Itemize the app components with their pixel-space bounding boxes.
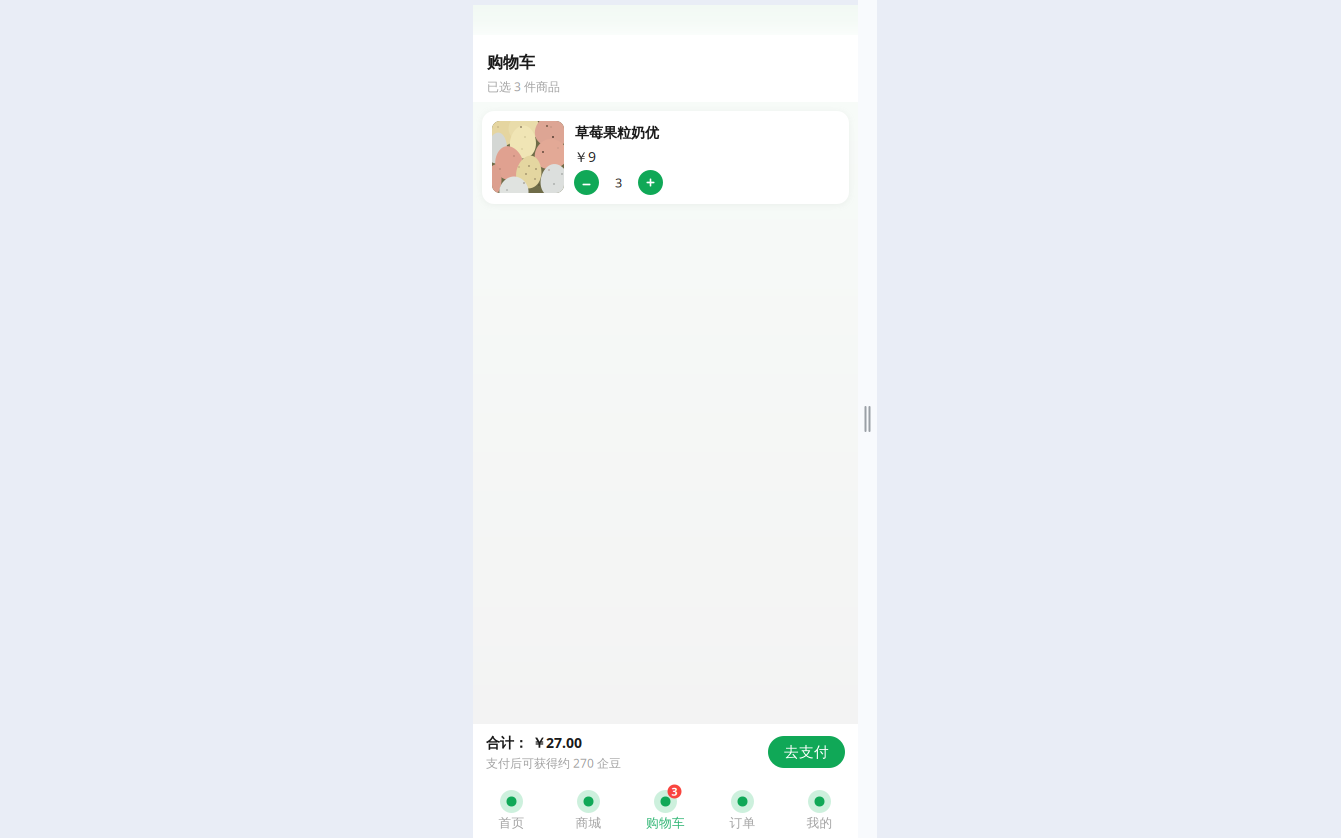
staticText: 商城 xyxy=(575,815,601,831)
staticText: 支付后可获得约 270 企豆 xyxy=(486,755,621,771)
button[interactable]: 商城 xyxy=(550,790,627,830)
staticText: 已选 3 件商品 xyxy=(487,78,560,95)
button[interactable]: 首页 xyxy=(473,790,550,830)
staticText: 3 xyxy=(671,784,677,799)
button[interactable]: Resize preview xyxy=(858,399,877,439)
staticText: 去支付 xyxy=(784,743,829,761)
button[interactable]: Increase quantity xyxy=(638,170,663,195)
staticText: 草莓果粒奶优 xyxy=(575,124,659,142)
staticText: 我的 xyxy=(806,815,832,831)
staticText: 合计： ￥27.00 xyxy=(486,733,582,752)
button[interactable]: 订单 xyxy=(704,790,781,830)
staticText: ￥9 xyxy=(574,147,596,166)
button[interactable]: 3 xyxy=(627,790,704,830)
staticText: 购物车 xyxy=(487,52,535,73)
button[interactable]: 去支付 xyxy=(768,736,845,768)
staticText: 3 xyxy=(615,174,622,191)
staticText: 购物车 xyxy=(646,815,685,831)
button[interactable]: 我的 xyxy=(781,790,858,830)
button[interactable]: Decrease quantity xyxy=(574,170,599,195)
staticText: 首页 xyxy=(498,815,524,831)
button[interactable]: 草莓果粒奶优 xyxy=(482,111,849,204)
staticText: 订单 xyxy=(729,815,755,831)
